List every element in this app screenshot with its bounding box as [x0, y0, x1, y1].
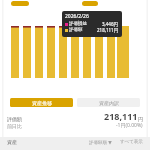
staticText: 評価額: [7, 116, 22, 122]
staticText: 資産内訳: [99, 100, 119, 106]
staticText: -1円(0.00%): [116, 122, 143, 129]
button[interactable]: [11, 1, 29, 6]
staticText: 前日比: [7, 123, 22, 129]
staticText: 2026/2/26: [65, 13, 89, 20]
staticText: 評価額: [69, 27, 83, 33]
button[interactable]: 資産推移: [10, 98, 73, 107]
staticText: 評価損益: [69, 21, 87, 27]
staticText: 資産: [7, 139, 17, 145]
staticText: 3,446円: [102, 21, 119, 27]
staticText: 評価額順 ▼: [89, 139, 112, 145]
staticText: 円: [138, 116, 143, 122]
button[interactable]: 資産内訳: [77, 98, 140, 107]
staticText: 資産推移: [32, 100, 52, 106]
staticText: 218,111: [104, 110, 138, 122]
staticText: すべて表示: [120, 139, 143, 145]
button[interactable]: [82, 1, 98, 6]
staticText: 218,111円: [97, 27, 119, 33]
